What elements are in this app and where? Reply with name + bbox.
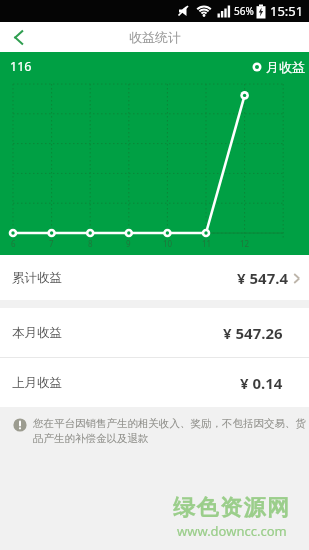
staticText: www.downcc.com <box>177 522 287 540</box>
staticText: ¥ 0.14 <box>240 373 283 393</box>
staticText: 11 <box>202 238 212 249</box>
staticText: 您在平台因销售产生的相关收入、奖励，不包括因交易、货 品产生的补偿金以及退款 <box>33 417 306 445</box>
staticText: 7 <box>49 238 54 249</box>
staticText: 8 <box>88 238 93 249</box>
staticText: 本月收益 <box>12 325 62 341</box>
staticText: 12 <box>240 238 250 249</box>
button[interactable]: 本月收益 <box>0 308 309 357</box>
staticText: 56% <box>234 4 254 18</box>
button[interactable] <box>0 22 36 52</box>
staticText: 累计收益 <box>12 270 62 286</box>
staticText: 上月收益 <box>12 375 62 391</box>
staticText: ¥ 547.4 <box>237 268 289 288</box>
staticText: 15:51 <box>270 2 304 20</box>
staticText: 月收益 <box>266 59 305 75</box>
staticText: ¥ 547.26 <box>223 323 283 343</box>
staticText: 10 <box>163 238 173 249</box>
staticText: 6 <box>11 238 16 249</box>
staticText: 116 <box>10 58 32 75</box>
staticText: 9 <box>126 238 131 249</box>
button[interactable]: 累计收益 <box>0 255 309 300</box>
staticText: 绿色资源网 <box>173 494 291 522</box>
button[interactable]: 上月收益 <box>0 358 309 407</box>
staticText: 收益统计 <box>129 29 181 45</box>
